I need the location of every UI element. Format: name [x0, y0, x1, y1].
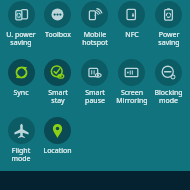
- button[interactable]: Screen Mirroring: [113, 59, 150, 105]
- staticText: Sync: [13, 88, 29, 98]
- staticText: Power saving: [158, 30, 180, 47]
- staticText: Mobile hotspot: [82, 30, 108, 47]
- button[interactable]: Flight mode: [3, 117, 39, 163]
- staticText: Smart pause: [85, 88, 105, 105]
- button[interactable]: NFC: [113, 1, 150, 40]
- button[interactable]: Smart stay: [39, 59, 76, 105]
- staticText: Toolbox: [45, 30, 71, 40]
- staticText: Location: [43, 146, 72, 156]
- staticText: Blocking mode: [154, 88, 183, 105]
- button[interactable]: Ultra power saving: [3, 1, 39, 47]
- button[interactable]: Power saving: [150, 1, 187, 47]
- staticText: Smart stay: [48, 88, 68, 105]
- button[interactable]: Sync: [3, 59, 39, 98]
- button[interactable]: Location: [39, 117, 76, 156]
- staticText: Flight mode: [11, 146, 31, 163]
- button[interactable]: Mobile hotspot: [76, 1, 113, 47]
- staticText: Screen Mirroring: [116, 88, 148, 105]
- staticText: NFC: [125, 30, 139, 40]
- button[interactable]: Toolbox: [39, 1, 76, 40]
- staticText: U. power saving: [6, 30, 36, 47]
- button[interactable]: Smart pause: [76, 59, 113, 105]
- button[interactable]: Blocking mode: [150, 59, 187, 105]
